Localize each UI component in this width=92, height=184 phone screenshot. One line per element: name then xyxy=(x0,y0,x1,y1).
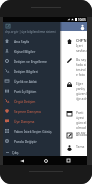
button[interactable]: Üye Danışma xyxy=(3,116,60,126)
button[interactable]: Seçmen Danışma xyxy=(3,106,60,116)
staticText: Eğer yanlış güvenliğe adresinizde partid… xyxy=(76,81,87,101)
staticText: İçeri sayfası bilgi ve duyuru ekranıdır xyxy=(76,43,87,52)
staticText: CHP'NET E xyxy=(76,38,87,43)
button[interactable]: Parti üyesi güncel olmadan sorumlusu car… xyxy=(3,110,87,138)
staticText: Parola Değiştir xyxy=(14,139,37,143)
staticText: chp.org.tr | üye bilgilendirme sistemi xyxy=(5,30,56,34)
button[interactable]: Tamamla xyxy=(3,144,87,153)
button[interactable]: Home xyxy=(41,156,50,165)
staticText: Çıkış xyxy=(12,151,19,155)
staticText: 10:05 xyxy=(78,18,86,22)
staticText: Parti İçi Eğitim xyxy=(14,89,37,93)
staticText: İletişim ve Engelleme xyxy=(14,59,47,63)
button[interactable]: Bu sayfada sitesinde fotoğraf bilgilerin… xyxy=(3,57,87,80)
staticText: Arkadaş katıl xyxy=(76,132,87,136)
button[interactable]: Parti İçi Eğitim xyxy=(3,86,60,96)
button[interactable]: Arkadaş katıl xyxy=(3,132,87,141)
staticText: İletişim Bilgileri xyxy=(14,69,38,73)
staticText: Örgüt İletişim xyxy=(14,99,36,103)
staticText: Tamamla xyxy=(76,144,87,148)
button[interactable]: Open navigation menu xyxy=(3,22,12,31)
staticText: Bu sayfada sitesinde fotoğraf bilgilerin… xyxy=(76,57,87,77)
staticText: Parti üyesi güncel olmadan sorumlusu car… xyxy=(76,110,87,135)
staticText: Kişisel Bilgiler xyxy=(14,49,36,53)
button[interactable]: Account xyxy=(78,22,87,31)
button[interactable]: Üyelik ve Aidat xyxy=(3,76,60,86)
staticText: Ana Sayfa xyxy=(14,39,30,43)
staticText: Üyelik ve Aidat xyxy=(14,79,37,83)
button[interactable]: Ana Sayfa xyxy=(3,36,60,46)
staticText: Yakını İstek Seçim Görüş xyxy=(14,129,52,133)
staticText: Üye Danışma xyxy=(14,119,35,123)
button[interactable]: İletişim Bilgileri xyxy=(3,66,60,76)
button[interactable]: Örgüt İletişim xyxy=(3,96,60,106)
button[interactable]: CHP'NET E xyxy=(3,38,87,52)
button[interactable]: Çıkış xyxy=(3,149,60,156)
staticText: Seçmen Danışma xyxy=(14,109,41,113)
button[interactable]: Kişisel Bilgiler xyxy=(3,46,60,56)
button[interactable]: Recents xyxy=(64,156,73,165)
button[interactable]: Back xyxy=(17,156,26,165)
button[interactable]: Yakını İstek Seçim Görüş xyxy=(3,126,60,136)
button[interactable]: Parola Değiştir xyxy=(3,136,60,146)
button[interactable]: Eğer yanlış güvenliğe adresinizde partid… xyxy=(3,81,87,104)
button[interactable]: İletişim ve Engelleme xyxy=(3,56,60,66)
